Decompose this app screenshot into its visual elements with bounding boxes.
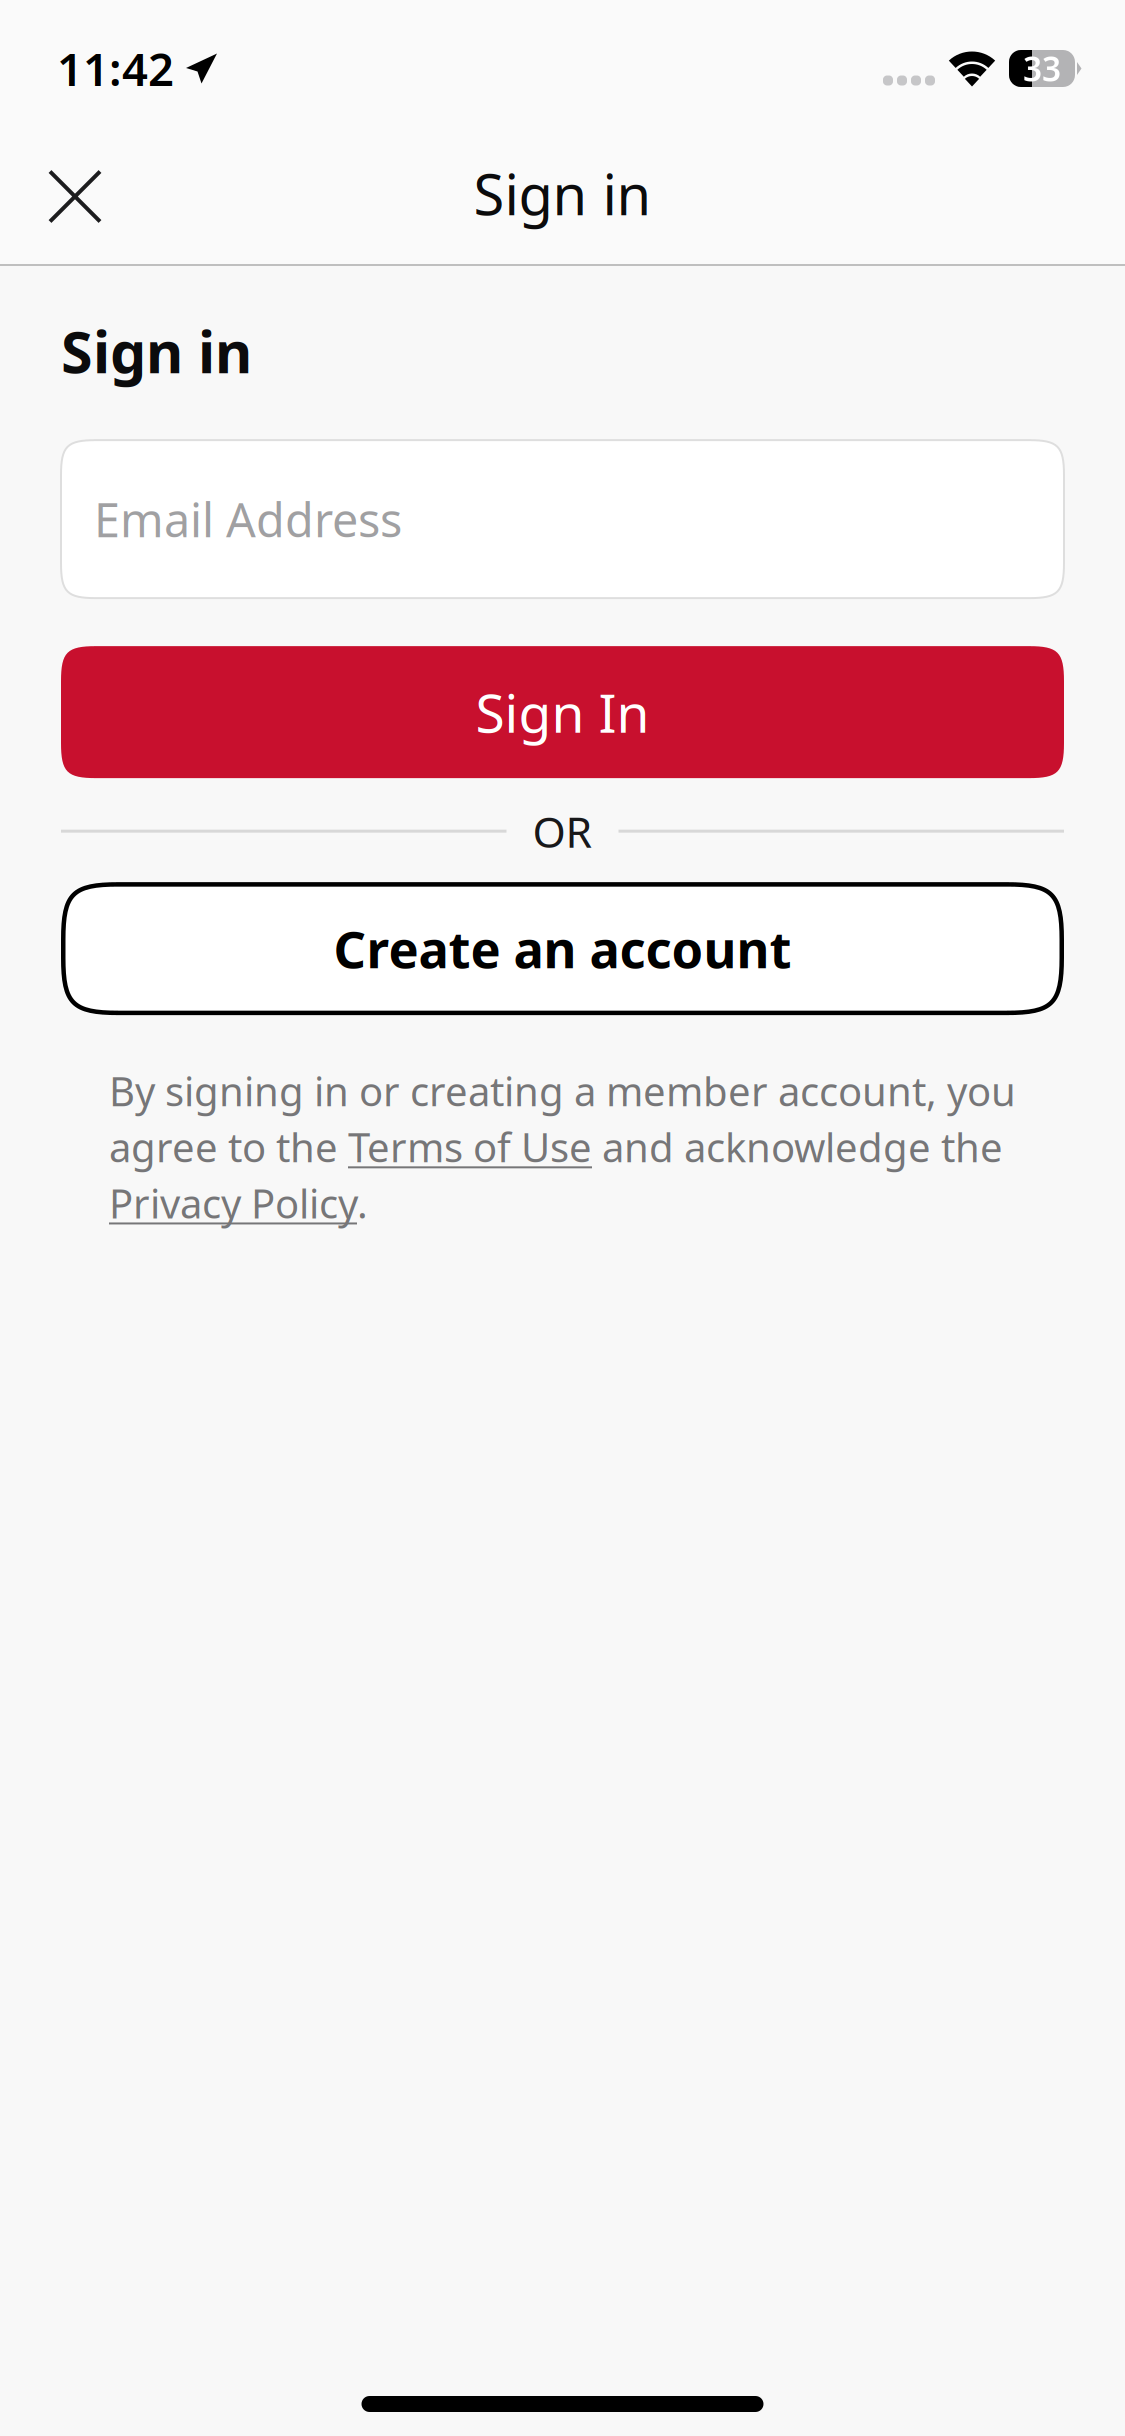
staticText: 33 [1023,46,1061,91]
button[interactable]: Create an account [61,882,1064,1015]
staticText: 11:42 [57,38,174,99]
staticText: Sign In [475,677,649,747]
staticText: Email Address [94,488,402,550]
staticText: Sign in [61,313,252,389]
button[interactable]: Sign In [61,646,1064,778]
staticText: OR [532,803,592,859]
staticText: Sign in [473,156,651,231]
button[interactable]: Close [20,141,130,251]
staticText: Create an account [333,915,791,982]
staticText: By signing in or creating a member accou… [109,1064,1016,1229]
